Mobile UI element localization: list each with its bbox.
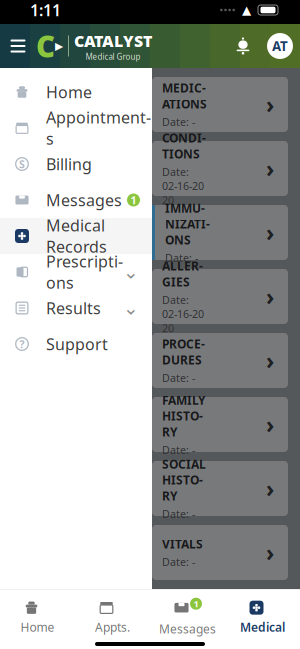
staticText: › [266, 89, 274, 119]
staticText: SOCIAL HISTORY [162, 456, 206, 504]
button[interactable]: Account [260, 24, 300, 68]
button[interactable]: PROCEDURES [152, 333, 288, 388]
staticText: ? [19, 337, 24, 351]
staticText: › [266, 537, 274, 567]
button[interactable]: Home [0, 591, 75, 635]
staticText: Date: 02-16-2020 [162, 293, 204, 335]
staticText: Date: - [162, 371, 195, 385]
button[interactable]: Results [0, 290, 152, 326]
staticText: Support [46, 333, 108, 355]
staticText: MEDICATIONS [162, 80, 207, 112]
staticText: Date: - [162, 443, 195, 457]
staticText: Messages [46, 189, 122, 211]
button[interactable]: S [0, 146, 152, 182]
button[interactable]: IMMUNIZATIONS [152, 205, 288, 260]
staticText: › [266, 153, 274, 183]
staticText: Home [46, 81, 92, 103]
staticText: C [36, 26, 55, 65]
button[interactable]: Appointments [0, 110, 152, 146]
staticText: S [19, 157, 25, 171]
staticText: VITALS [162, 536, 203, 552]
staticText: Home [20, 619, 54, 635]
staticText: ALLERGIES [162, 258, 203, 290]
button[interactable]: Appts. [75, 591, 150, 635]
staticText: ▶ [55, 40, 63, 52]
staticText: › [266, 217, 274, 247]
staticText: Billing [46, 153, 92, 175]
button[interactable]: ALLERGIES [152, 269, 288, 324]
button[interactable]: 1 [150, 589, 225, 637]
staticText: CONDITIONS [162, 130, 206, 162]
staticText: › [266, 409, 274, 439]
staticText: ⌄ [123, 297, 139, 319]
staticText: AT [272, 37, 288, 55]
staticText: 1 [193, 597, 198, 610]
staticText: Date: 02-16-2020 [162, 165, 204, 207]
button[interactable]: Menu [0, 24, 36, 68]
button[interactable]: MEDICATIONS [152, 77, 288, 132]
staticText: PROCEDURES [162, 336, 205, 368]
button[interactable]: CONDITIONS [152, 141, 288, 196]
button[interactable]: FAMILY HISTORY [152, 397, 288, 452]
button[interactable]: Notifications [226, 24, 260, 68]
button[interactable]: Messages [0, 182, 152, 218]
staticText: 1 [130, 193, 136, 207]
staticText: › [266, 281, 274, 311]
staticText: › [266, 473, 274, 503]
button[interactable]: Medical Records [0, 218, 152, 254]
staticText: Medical Group [85, 51, 140, 62]
staticText: Date: - [162, 555, 195, 569]
staticText: Date: - [165, 251, 198, 265]
staticText: IMMUNIZATIONS [165, 200, 210, 248]
staticText: 1:11 [30, 0, 61, 21]
staticText: Messages [159, 621, 216, 637]
button[interactable]: Prescriptions [0, 254, 152, 290]
staticText: Prescriptions [46, 251, 123, 293]
staticText: Medical [240, 619, 285, 635]
staticText: Date: - [162, 507, 195, 521]
staticText: Medical Records [46, 215, 107, 257]
staticText: Date: - [162, 115, 195, 129]
staticText: Appointments [46, 107, 151, 149]
button[interactable]: ? [0, 326, 152, 362]
button[interactable]: VITALS [152, 525, 288, 580]
staticText: ▲ [242, 3, 251, 17]
staticText: Appts. [95, 619, 130, 635]
button[interactable]: Home [0, 74, 152, 110]
button[interactable]: Medical [225, 591, 300, 635]
staticText: Results [46, 297, 101, 319]
staticText: › [266, 345, 274, 375]
staticText: FAMILY HISTORY [162, 392, 206, 440]
button[interactable]: SOCIAL HISTORY [152, 461, 288, 516]
staticText: CATALYST [74, 30, 152, 51]
staticText: ⌄ [123, 261, 139, 283]
